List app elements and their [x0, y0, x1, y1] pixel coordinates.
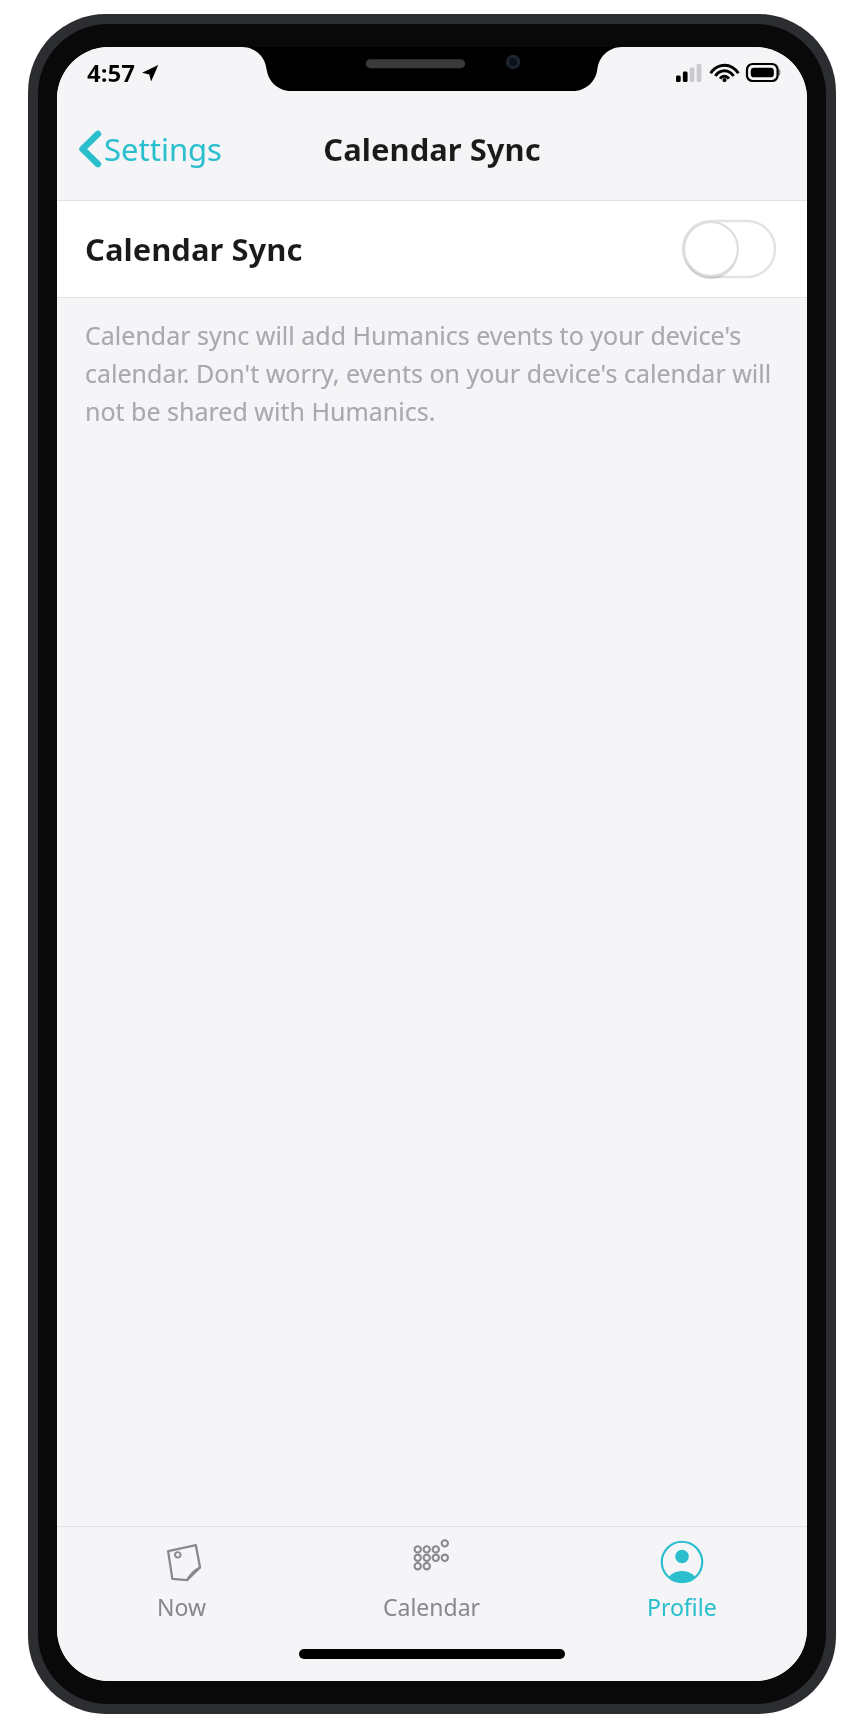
- button[interactable]: Calendar: [307, 1527, 557, 1637]
- staticText: Now: [157, 1591, 207, 1622]
- button[interactable]: Calendar Sync toggle, off: [683, 221, 775, 277]
- staticText: Calendar sync will add Humanics events t…: [85, 318, 779, 428]
- staticText: Profile: [647, 1591, 717, 1622]
- button[interactable]: Now: [57, 1527, 307, 1637]
- button[interactable]: Profile: [557, 1527, 807, 1637]
- button[interactable]: Settings: [57, 97, 236, 200]
- staticText: Calendar Sync: [323, 128, 541, 170]
- staticText: Calendar: [383, 1591, 481, 1622]
- button[interactable]: Calendar Sync: [57, 201, 807, 297]
- staticText: 4:57: [87, 56, 135, 89]
- staticText: Settings: [104, 128, 222, 170]
- staticText: Calendar Sync: [85, 228, 303, 270]
